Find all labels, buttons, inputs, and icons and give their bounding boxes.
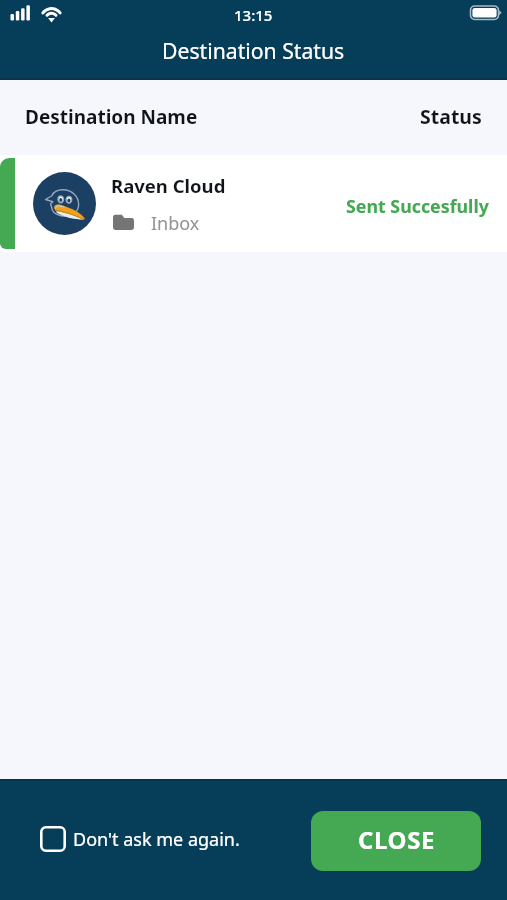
staticText: 13:15	[234, 5, 273, 25]
staticText: Don't ask me again.	[73, 827, 240, 852]
staticText: Raven Cloud	[111, 173, 226, 198]
button[interactable]: Don't ask me again.	[40, 826, 240, 852]
button[interactable]: CLOSE	[311, 811, 481, 871]
staticText: CLOSE	[358, 823, 435, 856]
button[interactable]: Raven Cloud account avatar	[0, 155, 507, 252]
staticText: Sent Succesfully	[346, 194, 489, 218]
other: Folder	[113, 213, 134, 230]
other: Raven Cloud account avatar	[33, 172, 96, 235]
staticText: Destination Name	[25, 104, 198, 130]
staticText: Destination Status	[162, 36, 345, 65]
staticText: Status	[420, 103, 482, 130]
staticText: Inbox	[151, 211, 200, 236]
